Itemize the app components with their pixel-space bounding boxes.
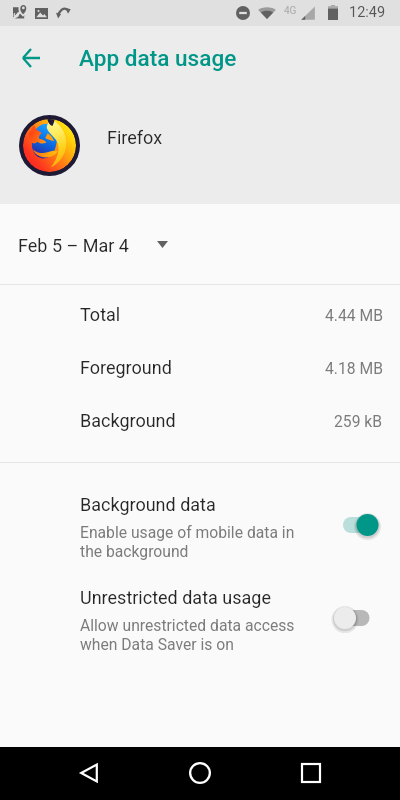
staticText: 12:49 [349, 4, 386, 21]
button[interactable]: Navigate up [11, 38, 51, 78]
staticText: Total [80, 304, 121, 325]
staticText: Foreground [80, 357, 172, 378]
staticText: Firefox [107, 127, 163, 148]
button[interactable]: Toggle on [330, 505, 386, 545]
staticText: 4.44 MB [325, 306, 383, 324]
staticText: Unrestricted data usage [80, 587, 271, 608]
button[interactable]: Total [0, 288, 400, 341]
button[interactable]: Unrestricted data usage [0, 565, 400, 658]
button[interactable]: Toggle off [330, 598, 386, 638]
staticText: Feb 5 – Mar 4 [18, 235, 129, 256]
staticText: Allow unrestricted data access when Data… [80, 616, 295, 654]
staticText: 4.18 MB [325, 359, 383, 377]
staticText: Background [80, 410, 176, 431]
staticText: Background data [80, 494, 216, 515]
button[interactable]: Background [0, 394, 400, 447]
button[interactable]: Recent apps [287, 749, 335, 797]
button[interactable]: Home [176, 749, 224, 797]
button[interactable]: Foreground [0, 341, 400, 394]
button[interactable]: Back [65, 749, 113, 797]
staticText: Enable usage of mobile data in the backg… [80, 523, 295, 561]
staticText: 4G [284, 5, 297, 17]
button[interactable]: Feb 5 – Mar 4 [0, 204, 400, 284]
staticText: App data usage [79, 45, 237, 71]
button[interactable]: Background data [0, 472, 400, 565]
staticText: 259 kB [334, 412, 383, 430]
